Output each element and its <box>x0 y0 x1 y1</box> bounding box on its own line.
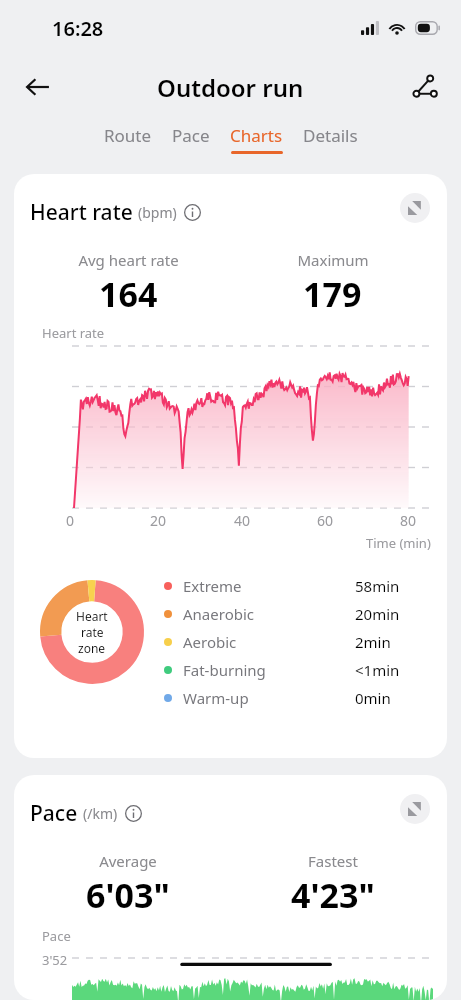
staticText: Details <box>303 124 358 147</box>
button[interactable]: Avg heart rate <box>26 250 230 317</box>
staticText: 20 <box>150 511 167 530</box>
staticText: Heart rate <box>42 324 105 342</box>
staticText: Anaerobic <box>183 604 254 624</box>
button[interactable]: Share <box>401 63 449 111</box>
staticText: Warm-up <box>183 688 249 708</box>
button[interactable]: Expand chart <box>400 794 430 824</box>
staticText: Aerobic <box>183 632 237 652</box>
staticText: Extreme <box>183 576 242 596</box>
button[interactable]: Heart rate <box>30 198 201 227</box>
button[interactable]: Maximum <box>230 250 435 317</box>
staticText: 179 <box>303 271 362 317</box>
button[interactable]: Details <box>303 124 358 154</box>
staticText: Pace <box>172 124 210 147</box>
button[interactable]: Expand chart <box>400 193 430 223</box>
staticText: 6'03" <box>86 872 170 918</box>
staticText: 20min <box>355 604 400 624</box>
button[interactable]: Charts <box>230 124 283 154</box>
button[interactable]: Route <box>104 124 152 154</box>
staticText: 0min <box>355 688 391 708</box>
staticText: Heart rate <box>30 198 133 227</box>
staticText: 164 <box>99 271 158 317</box>
staticText: 0 <box>66 511 75 530</box>
staticText: Outdoor run <box>157 71 304 104</box>
staticText: Heart <box>76 608 108 624</box>
staticText: Maximum <box>297 250 369 270</box>
staticText: Average <box>99 851 157 871</box>
staticText: Route <box>104 124 152 147</box>
button[interactable]: Pace <box>30 799 142 828</box>
staticText: Avg heart rate <box>78 250 179 270</box>
button[interactable]: Back <box>14 63 62 111</box>
staticText: 2min <box>355 632 391 652</box>
button[interactable]: Pace <box>172 124 210 154</box>
staticText: Pace <box>42 927 71 945</box>
staticText: 58min <box>355 576 400 596</box>
staticText: 3'52 <box>42 951 68 969</box>
staticText: (/km) <box>83 804 118 823</box>
staticText: 40 <box>234 511 251 530</box>
button[interactable]: Warm-up <box>164 684 429 712</box>
staticText: Fat-burning <box>183 660 266 680</box>
button[interactable]: Fastest <box>230 851 435 918</box>
staticText: Fastest <box>308 851 358 871</box>
staticText: Time (min) <box>366 534 431 552</box>
staticText: Charts <box>230 124 283 147</box>
staticText: <1min <box>355 660 400 680</box>
button[interactable]: Anaerobic <box>164 600 429 628</box>
staticText: rate <box>81 624 104 640</box>
button[interactable]: Extreme <box>164 572 429 600</box>
staticText: Pace <box>30 799 78 828</box>
staticText: (bpm) <box>138 203 177 222</box>
button[interactable]: Fat-burning <box>164 656 429 684</box>
button[interactable]: Average <box>26 851 230 918</box>
staticText: 4'23" <box>291 872 375 918</box>
button[interactable]: Aerobic <box>164 628 429 656</box>
staticText: 16:28 <box>52 15 104 42</box>
staticText: 80 <box>400 511 417 530</box>
staticText: zone <box>78 640 106 656</box>
staticText: 60 <box>317 511 334 530</box>
